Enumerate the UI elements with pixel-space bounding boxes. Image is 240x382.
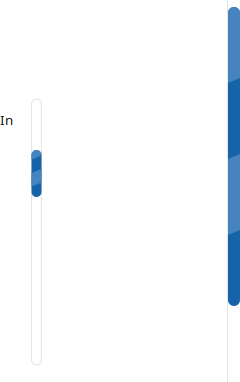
button[interactable]: Intensity [31, 99, 41, 365]
button[interactable]: Level [227, 0, 240, 382]
staticText: In [0, 111, 13, 129]
